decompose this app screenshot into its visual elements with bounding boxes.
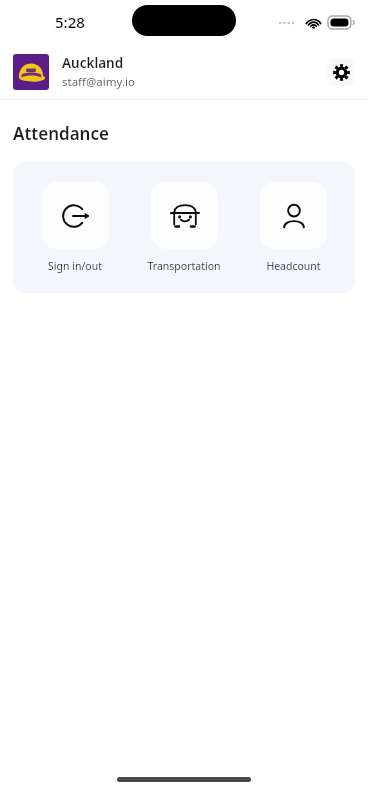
staticText: staff@aimy.io xyxy=(62,74,135,90)
staticText: Transportation xyxy=(147,259,221,273)
button[interactable]: Transportation xyxy=(137,182,231,273)
staticText: Headcount xyxy=(266,259,321,273)
button[interactable]: Headcount xyxy=(246,182,340,273)
staticText: Auckland xyxy=(62,54,124,72)
staticText: Attendance xyxy=(13,122,109,145)
button[interactable]: Settings xyxy=(327,58,355,86)
staticText: 5:28 xyxy=(55,12,85,32)
staticText: Sign in/out xyxy=(48,259,102,273)
button[interactable] xyxy=(13,54,49,90)
button[interactable]: Sign in/out xyxy=(28,182,122,273)
